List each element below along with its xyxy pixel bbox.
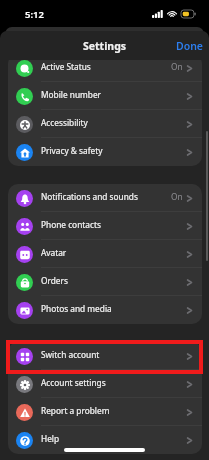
staticText: Privacy & safety [41, 145, 103, 156]
button[interactable]: Accessibility [8, 110, 202, 138]
button[interactable]: Mobile number [8, 82, 202, 110]
button[interactable]: Privacy & safety [8, 138, 202, 166]
staticText: Mobile number [41, 89, 101, 100]
staticText: Phone contacts [41, 219, 101, 230]
staticText: Notifications and sounds [41, 191, 138, 202]
staticText: Photos and media [41, 303, 112, 314]
button[interactable]: Orders [8, 268, 202, 296]
staticText: 5:12 [25, 8, 44, 21]
button[interactable]: Photos and media [8, 296, 202, 324]
staticText: Switch account [41, 349, 100, 360]
button[interactable]: Avatar [8, 240, 202, 268]
staticText: Accessibility [41, 117, 88, 128]
button[interactable]: Done [171, 35, 209, 57]
button[interactable]: Notifications and sounds [8, 184, 202, 212]
staticText: Report a problem [41, 405, 110, 416]
button[interactable]: Account settings [8, 370, 202, 398]
staticText: Orders [41, 275, 68, 286]
staticText: Help [41, 433, 60, 444]
staticText: Settings [83, 39, 127, 53]
staticText: Account settings [41, 377, 106, 388]
button[interactable]: Active Status [8, 60, 202, 82]
staticText: Avatar [41, 247, 67, 258]
button[interactable]: Switch account [8, 342, 202, 370]
staticText: On [171, 191, 183, 202]
staticText: Done [176, 39, 204, 53]
button[interactable]: Report a problem [8, 398, 202, 426]
staticText: On [171, 61, 183, 72]
staticText: Active Status [41, 61, 91, 72]
button[interactable]: Phone contacts [8, 212, 202, 240]
button[interactable]: Help [8, 426, 202, 454]
